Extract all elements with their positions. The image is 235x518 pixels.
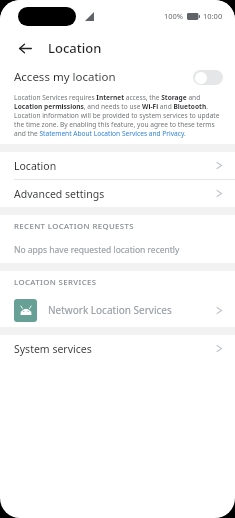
button[interactable]: Back bbox=[14, 37, 36, 59]
button[interactable]: System services bbox=[0, 335, 235, 362]
staticText: Access my location bbox=[14, 69, 116, 85]
button[interactable]: Location bbox=[0, 152, 235, 179]
staticText: Advanced settings bbox=[14, 187, 105, 201]
staticText: Location bbox=[48, 39, 102, 57]
button[interactable]: Access my location bbox=[0, 63, 235, 91]
staticText: 10:00 bbox=[203, 11, 223, 21]
staticText: LOCATION SERVICES bbox=[14, 277, 97, 288]
button[interactable]: Network Location Services bbox=[0, 293, 235, 327]
staticText: Location Services requires Internet acce… bbox=[14, 93, 223, 138]
staticText: RECENT LOCATION REQUESTS bbox=[14, 221, 135, 232]
staticText: 100% bbox=[164, 11, 184, 21]
staticText: Network Location Services bbox=[48, 303, 172, 317]
staticText: Location bbox=[14, 159, 57, 173]
staticText: No apps have requested location recently bbox=[14, 244, 180, 256]
staticText: System services bbox=[14, 342, 92, 356]
button[interactable]: Advanced settings bbox=[0, 180, 235, 207]
